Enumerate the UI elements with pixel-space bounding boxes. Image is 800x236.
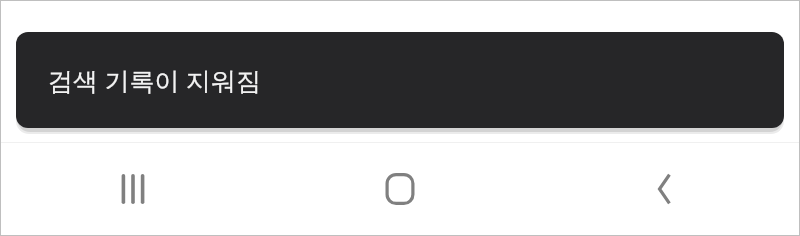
button[interactable]: 검색 기록이 지워짐	[16, 32, 784, 128]
button[interactable]: Back	[533, 142, 800, 236]
button[interactable]: Home	[266, 142, 533, 236]
button[interactable]: Recents	[0, 142, 266, 236]
staticText: 검색 기록이 지워짐	[48, 63, 262, 97]
